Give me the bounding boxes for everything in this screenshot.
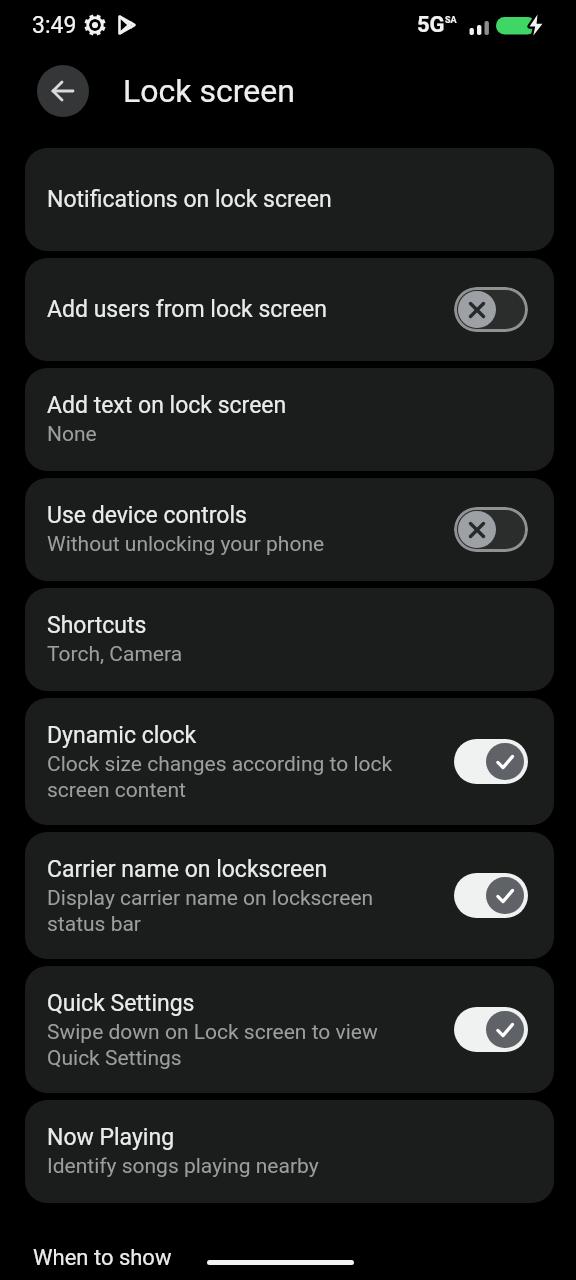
button[interactable] — [454, 739, 528, 784]
staticText: Without unlocking your phone — [47, 532, 325, 557]
button[interactable] — [454, 287, 528, 332]
button[interactable] — [454, 873, 528, 918]
staticText: Dynamic clock — [47, 722, 197, 749]
staticText: Clock size changes according to lock scr… — [47, 752, 393, 802]
staticText: When to show — [33, 1245, 172, 1271]
button[interactable]: Quick Settings — [25, 966, 554, 1093]
staticText: Quick Settings — [47, 990, 195, 1017]
staticText: SA — [445, 15, 457, 26]
button[interactable]: Carrier name on lockscreen — [25, 832, 554, 959]
staticText: Display carrier name on lockscreen statu… — [47, 886, 374, 936]
button[interactable]: Shortcuts — [25, 588, 554, 691]
staticText: Add text on lock screen — [47, 392, 287, 419]
button[interactable]: Add text on lock screen — [25, 368, 554, 471]
button[interactable] — [454, 507, 528, 552]
button[interactable]: Now Playing — [25, 1100, 554, 1203]
staticText: Torch, Camera — [47, 642, 183, 667]
staticText: Carrier name on lockscreen — [47, 856, 328, 883]
staticText: Use device controls — [47, 502, 247, 529]
staticText: Lock screen — [123, 72, 295, 110]
staticText: Shortcuts — [47, 612, 147, 639]
staticText: 5G — [417, 12, 445, 38]
button[interactable] — [454, 1007, 528, 1052]
staticText: Swipe down on Lock screen to view Quick … — [47, 1020, 378, 1070]
staticText: 3:49 — [32, 12, 77, 39]
staticText: None — [47, 422, 97, 447]
staticText: Add users from lock screen — [47, 296, 328, 323]
button[interactable]: Use device controls — [25, 478, 554, 581]
button[interactable]: Dynamic clock — [25, 698, 554, 825]
button[interactable] — [37, 65, 89, 117]
button[interactable]: Add users from lock screen — [25, 258, 554, 361]
staticText: Identify songs playing nearby — [47, 1154, 319, 1179]
button[interactable]: Notifications on lock screen — [25, 148, 554, 251]
staticText: Notifications on lock screen — [47, 186, 332, 213]
staticText: Now Playing — [47, 1124, 175, 1151]
